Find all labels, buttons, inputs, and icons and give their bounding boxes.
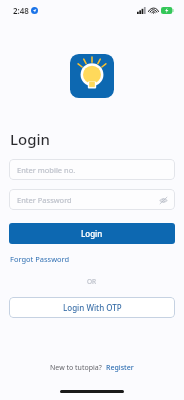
staticText: Enter Password — [17, 195, 72, 205]
staticText: Login — [10, 129, 50, 149]
staticText: Forgot Password — [10, 254, 70, 264]
button[interactable]: Login — [9, 223, 175, 244]
staticText: New to tutopia? — [50, 363, 102, 373]
staticText: OR — [87, 277, 97, 286]
button[interactable]: Show password — [158, 195, 168, 205]
button[interactable]: Enter Password — [9, 189, 175, 210]
staticText: Register — [106, 363, 134, 373]
button[interactable]: Register — [106, 363, 134, 373]
button[interactable]: Enter mobile no. — [9, 159, 175, 180]
button[interactable]: Login With OTP — [9, 297, 175, 318]
staticText: Enter mobile no. — [17, 165, 76, 175]
staticText: Login With OTP — [63, 302, 122, 313]
staticText: 2:48 — [13, 5, 29, 16]
button[interactable]: Forgot Password — [10, 254, 70, 264]
staticText: Login — [81, 228, 103, 239]
